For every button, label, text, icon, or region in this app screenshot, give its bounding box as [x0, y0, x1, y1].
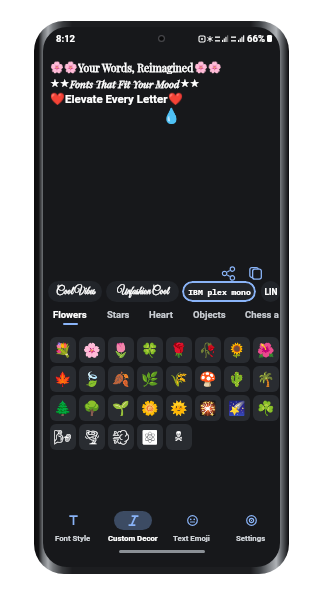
staticText: 🌳 [83, 400, 101, 416]
button[interactable]: Custom Decor [103, 503, 162, 550]
staticText: 🌵 [228, 371, 246, 387]
button[interactable]: 🌹 [166, 337, 192, 363]
staticText: ☘ [257, 400, 275, 416]
button[interactable]: 🌠 [224, 395, 250, 421]
button[interactable]: Copy [246, 263, 266, 283]
staticText: Custom Decor [108, 534, 158, 543]
staticText: 🌠 [228, 400, 246, 416]
staticText: 💐 [54, 342, 72, 358]
button[interactable]: Share [218, 263, 238, 283]
staticText: 🌷 [112, 342, 130, 358]
button[interactable]: 🌬 [50, 424, 76, 450]
button[interactable]: 🌸 [79, 337, 105, 363]
button[interactable]: 🌷 [108, 337, 134, 363]
staticText: IBM plex mono [188, 287, 251, 297]
staticText: ★★ [50, 77, 70, 90]
button[interactable]: 🍂 [108, 366, 134, 392]
staticText: Settings [236, 534, 266, 543]
staticText: Stars [107, 309, 130, 320]
button[interactable]: 🌼 [137, 395, 163, 421]
button[interactable]: 🌻 [224, 337, 250, 363]
button[interactable]: IBM plex mono [182, 281, 256, 302]
button[interactable]: 🌴 [253, 366, 279, 392]
staticText: 🍀 [141, 342, 159, 358]
staticText: 💨 [112, 429, 130, 445]
button[interactable]: Settings [221, 503, 280, 550]
staticText: 🍁 [54, 371, 72, 387]
staticText: Unfashion Cool [117, 285, 169, 298]
staticText: 🎇 [199, 400, 217, 416]
staticText: 🍄 [199, 371, 217, 387]
staticText: 🌴 [257, 371, 275, 387]
staticText: Elevate Every Letter [65, 92, 168, 105]
button[interactable]: Flowers [45, 306, 95, 334]
staticText: 💧 [162, 107, 181, 125]
staticText: Chess a [245, 309, 279, 320]
staticText: 🕱 [175, 430, 183, 444]
staticText: 🌿 [141, 371, 159, 387]
staticText: 🍃 [83, 371, 101, 387]
staticText: Text Emoji [173, 534, 210, 543]
button[interactable]: LIN [261, 281, 280, 302]
staticText: 🥀 [199, 342, 217, 358]
button[interactable]: 🌵 [224, 366, 250, 392]
staticText: ❤ [168, 92, 183, 105]
staticText: 8:12 [56, 33, 76, 44]
staticText: 🌾 [170, 371, 188, 387]
staticText: Flowers [53, 309, 87, 320]
staticText: LIN [264, 287, 278, 297]
button[interactable]: 🍁 [50, 366, 76, 392]
staticText: 🌸🌸 [50, 61, 78, 74]
staticText: 🌹 [170, 342, 188, 358]
staticText: 🌻 [228, 342, 246, 358]
button[interactable]: ⚛ [137, 424, 163, 450]
staticText: 🌬 [54, 429, 72, 445]
button[interactable]: Font Style [43, 503, 103, 550]
staticText: Heart [149, 309, 173, 320]
button[interactable]: 🌳 [79, 395, 105, 421]
button[interactable]: Heart [136, 306, 186, 334]
staticText: 🌞 [170, 400, 188, 416]
button[interactable]: 🍀 [137, 337, 163, 363]
button[interactable]: ☘ [253, 395, 279, 421]
staticText: 🌸 [83, 342, 101, 358]
staticText: ❤ [50, 92, 65, 105]
button[interactable]: Stars [93, 306, 143, 334]
staticText: Objects [193, 309, 226, 320]
button[interactable]: Objects [184, 306, 234, 334]
staticText: 🌪 [83, 429, 101, 445]
button[interactable]: 🌺 [253, 337, 279, 363]
staticText: Your Words, Reimagined [78, 61, 194, 74]
button[interactable]: Unfashion Cool [106, 281, 179, 302]
staticText: ⚛ [141, 429, 159, 445]
button[interactable]: 💨 [108, 424, 134, 450]
button[interactable]: 🥀 [195, 337, 221, 363]
button[interactable]: 🌱 [108, 395, 134, 421]
button[interactable]: Text Emoji [162, 503, 221, 550]
button[interactable]: 🌿 [137, 366, 163, 392]
staticText: 🍂 [112, 371, 130, 387]
button[interactable]: 🌞 [166, 395, 192, 421]
staticText: Font Style [55, 534, 91, 543]
button[interactable]: 💐 [50, 337, 76, 363]
button[interactable]: 🎇 [195, 395, 221, 421]
button[interactable]: 🍄 [195, 366, 221, 392]
button[interactable]: 🌪 [79, 424, 105, 450]
staticText: 🌲 [54, 400, 72, 416]
button[interactable]: Cool Vibes [48, 281, 102, 302]
button[interactable]: 🌾 [166, 366, 192, 392]
button[interactable]: 🍃 [79, 366, 105, 392]
button[interactable]: Chess a [237, 306, 280, 334]
staticText: 🌺 [257, 342, 275, 358]
button[interactable]: 🕱 [166, 424, 192, 450]
staticText: 🌱 [112, 400, 130, 416]
staticText: Cool Vibes [56, 285, 95, 298]
staticText: ★★ [180, 77, 200, 90]
staticText: 🌸🌸 [194, 61, 222, 74]
staticText: Fonts That Fit Your Mood [70, 77, 180, 90]
staticText: 66% [247, 33, 265, 44]
staticText: 🌼 [141, 400, 159, 416]
button[interactable]: 🌲 [50, 395, 76, 421]
